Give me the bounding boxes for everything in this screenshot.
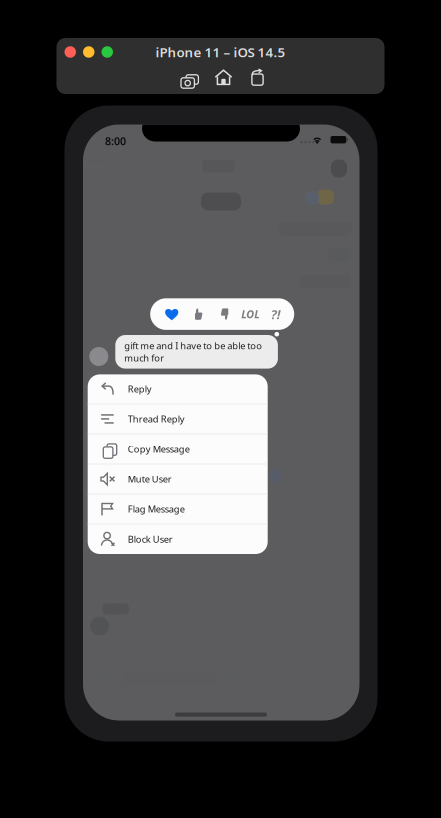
button[interactable]: Block User (88, 524, 268, 554)
staticText: iPhone 11 – iOS 14.5 (155, 43, 285, 61)
button[interactable]: Copy Message (88, 434, 268, 464)
button[interactable]: Flag Message (88, 494, 268, 524)
button[interactable]: ?! (267, 301, 285, 327)
button[interactable]: Reply (88, 374, 268, 404)
staticText: Flag Message (128, 503, 185, 515)
staticText: Thread Reply (128, 413, 185, 425)
staticText: Reply (128, 383, 152, 395)
staticText: Mute User (128, 473, 172, 485)
button[interactable]: Like (188, 301, 210, 327)
button[interactable]: Mute User (88, 464, 268, 494)
staticText: LOL (241, 307, 260, 321)
button[interactable]: Dislike (214, 301, 236, 327)
button[interactable]: Screenshot (176, 69, 196, 87)
button[interactable]: Thread Reply (88, 404, 268, 434)
staticText: 8:00 (105, 134, 126, 148)
button[interactable]: Love (160, 301, 184, 327)
button[interactable]: Rotate (250, 69, 264, 87)
staticText: gift me and I have to be able too much f… (124, 339, 262, 364)
staticText: Copy Message (128, 443, 190, 455)
staticText: Block User (128, 533, 173, 545)
staticText: ?! (271, 305, 281, 323)
button[interactable]: Home (214, 69, 232, 87)
button[interactable]: LOL (239, 301, 263, 327)
